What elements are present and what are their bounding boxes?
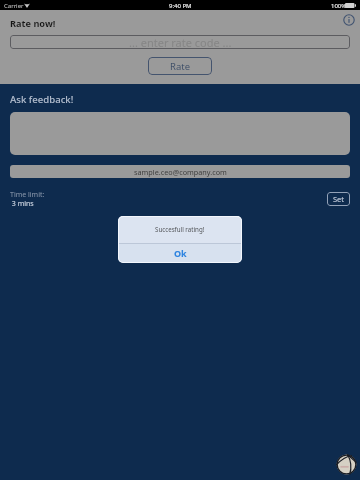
staticText: Time limit: <box>10 190 45 200</box>
staticText: ... enter rate code ... <box>129 35 232 49</box>
staticText: Rate now! <box>10 17 56 30</box>
staticText: 3 mins <box>10 199 34 209</box>
staticText: Rate <box>170 60 191 73</box>
staticText: Ask feedback! <box>10 93 74 106</box>
button[interactable]: Basketball <box>336 454 357 475</box>
staticText: 9:40 PM <box>169 2 192 10</box>
button[interactable]: Rate <box>148 57 212 75</box>
staticText: Set <box>333 194 345 204</box>
button[interactable]: sample.ceo@company.com <box>10 165 350 178</box>
staticText: Ok <box>174 247 187 259</box>
staticText: Carrier <box>4 2 24 10</box>
staticText: sample.ceo@company.com <box>134 167 227 177</box>
staticText: 100% <box>331 2 347 10</box>
button[interactable] <box>10 112 350 155</box>
button[interactable]: ... enter rate code ... <box>10 35 350 49</box>
button[interactable]: Set <box>327 192 350 206</box>
button[interactable]: Info <box>342 13 356 27</box>
button[interactable]: Ok <box>118 244 242 263</box>
staticText: Succesfull rating! <box>155 225 205 233</box>
